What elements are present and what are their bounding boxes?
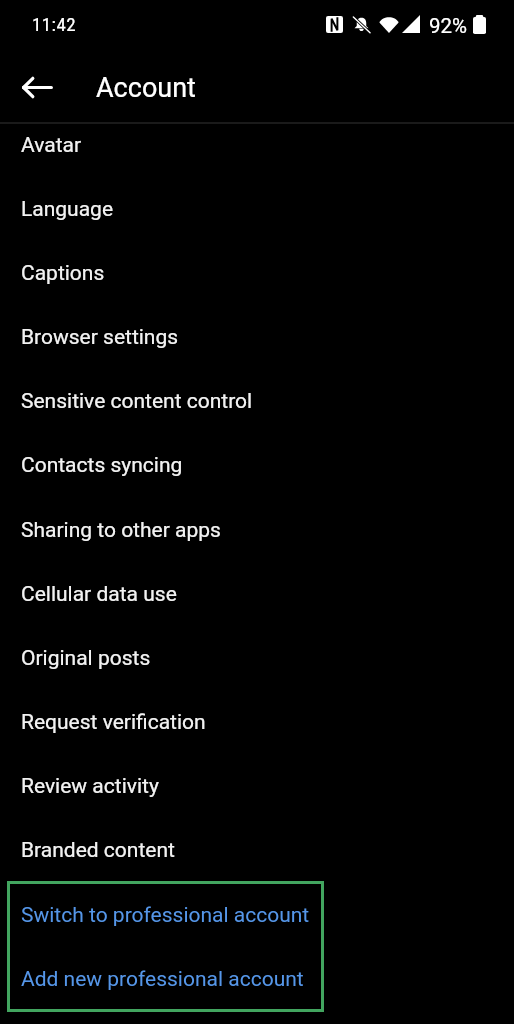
button[interactable]: Captions (0, 241, 514, 305)
staticText: Original posts (21, 646, 151, 671)
staticText: Sensitive content control (21, 389, 253, 414)
button[interactable]: Avatar (0, 113, 514, 177)
button[interactable]: Review activity (0, 754, 514, 818)
staticText: Language (21, 197, 114, 222)
staticText: Cellular data use (21, 582, 177, 607)
staticText: Sharing to other apps (21, 518, 221, 543)
staticText: Browser settings (21, 325, 179, 350)
button[interactable]: Original posts (0, 626, 514, 690)
staticText: Add new professional account (21, 967, 304, 992)
staticText: 11:42 (32, 13, 76, 35)
staticText: Branded content (21, 838, 175, 863)
button[interactable]: Request verification (0, 690, 514, 754)
button[interactable]: Add new professional account (0, 947, 514, 1011)
button[interactable]: Branded content (0, 818, 514, 882)
staticText: Contacts syncing (21, 453, 183, 478)
staticText: Request verification (21, 710, 206, 735)
button[interactable]: Contacts syncing (0, 433, 514, 497)
staticText: Captions (21, 261, 105, 286)
staticText: Switch to professional account (21, 903, 310, 928)
staticText: Avatar (21, 133, 82, 158)
button[interactable]: Browser settings (0, 305, 514, 369)
staticText: 92% (429, 14, 468, 38)
button[interactable]: Language (0, 177, 514, 241)
button[interactable]: Sensitive content control (0, 369, 514, 433)
button[interactable]: Cellular data use (0, 562, 514, 626)
staticText: Account (96, 72, 196, 104)
button[interactable]: Sharing to other apps (0, 498, 514, 562)
button[interactable]: Switch to professional account (0, 883, 514, 947)
button[interactable]: Back (13, 63, 61, 111)
staticText: Review activity (21, 774, 159, 799)
